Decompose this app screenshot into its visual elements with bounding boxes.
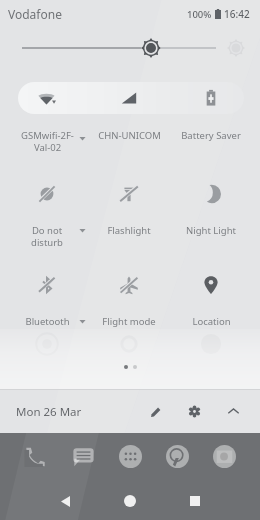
staticText: Flight mode xyxy=(102,315,156,328)
button[interactable] xyxy=(7,174,87,236)
button[interactable] xyxy=(7,265,87,327)
button[interactable]: Phone xyxy=(14,437,56,475)
button[interactable]: Edit xyxy=(141,397,171,426)
button[interactable]: Settings xyxy=(179,397,209,426)
staticText: Battery Saver xyxy=(181,129,241,142)
button[interactable]: Apps xyxy=(109,437,151,475)
button[interactable]: Battery saver xyxy=(185,82,237,114)
staticText: Location xyxy=(192,315,231,328)
staticText: Mon 26 Mar xyxy=(16,404,82,420)
staticText: Vodafone xyxy=(8,6,62,22)
button[interactable]: Assistant xyxy=(156,437,198,475)
button[interactable] xyxy=(89,265,169,327)
button[interactable]: Home xyxy=(120,491,140,511)
button[interactable]: Recents xyxy=(185,491,205,511)
button[interactable] xyxy=(171,265,251,327)
button[interactable]: Messages xyxy=(62,437,104,475)
staticText: Bluetooth xyxy=(25,315,70,328)
staticText: Flashlight xyxy=(107,224,151,237)
staticText: GSMwifi-2F- Val-02 xyxy=(21,129,74,153)
staticText: Night Light xyxy=(186,224,236,237)
button[interactable]: Mon 26 Mar xyxy=(16,404,82,420)
button[interactable]: Brightness xyxy=(141,38,161,58)
button[interactable]: Back xyxy=(55,491,75,511)
button[interactable] xyxy=(171,174,251,236)
staticText: Do not disturb xyxy=(31,224,63,248)
button[interactable] xyxy=(89,174,169,236)
staticText: CHN-UNICOM xyxy=(98,129,161,142)
button[interactable]: Wi-Fi xyxy=(21,82,73,114)
staticText: 100% xyxy=(187,8,212,21)
button[interactable]: Camera xyxy=(203,437,245,475)
staticText: 16:42 xyxy=(224,7,250,21)
button[interactable]: Auto brightness xyxy=(227,39,245,57)
button[interactable]: Collapse xyxy=(218,397,248,426)
button[interactable]: Mobile data xyxy=(103,82,155,114)
